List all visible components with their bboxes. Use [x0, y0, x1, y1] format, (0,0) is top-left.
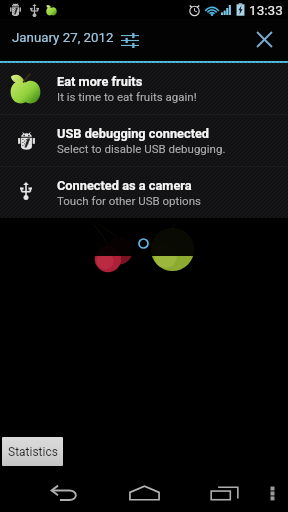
button[interactable]: Recent apps: [202, 473, 246, 512]
staticText: Statistics: [8, 445, 58, 459]
staticText: It is time to eat fruits again!: [57, 90, 197, 103]
staticText: January 27, 2012: [12, 30, 114, 46]
staticText: 13:33: [249, 2, 283, 18]
button[interactable]: Clear all notifications: [248, 23, 280, 55]
button[interactable]: USB debugging connected: [0, 115, 288, 167]
staticText: Touch for other USB options: [57, 194, 201, 207]
button[interactable]: Connected as a camera: [0, 167, 288, 219]
staticText: USB debugging connected: [57, 126, 210, 141]
staticText: Connected as a camera: [57, 178, 192, 193]
button[interactable]: Eat more fruits: [0, 63, 288, 115]
staticText: Select to disable USB debugging.: [57, 142, 226, 155]
button[interactable]: Menu: [258, 473, 286, 512]
button[interactable]: Quick settings: [117, 27, 143, 53]
button[interactable]: Statistics: [2, 437, 63, 466]
staticText: Eat more fruits: [57, 74, 143, 89]
button[interactable]: Home: [122, 473, 166, 512]
button[interactable]: Back: [42, 473, 86, 512]
